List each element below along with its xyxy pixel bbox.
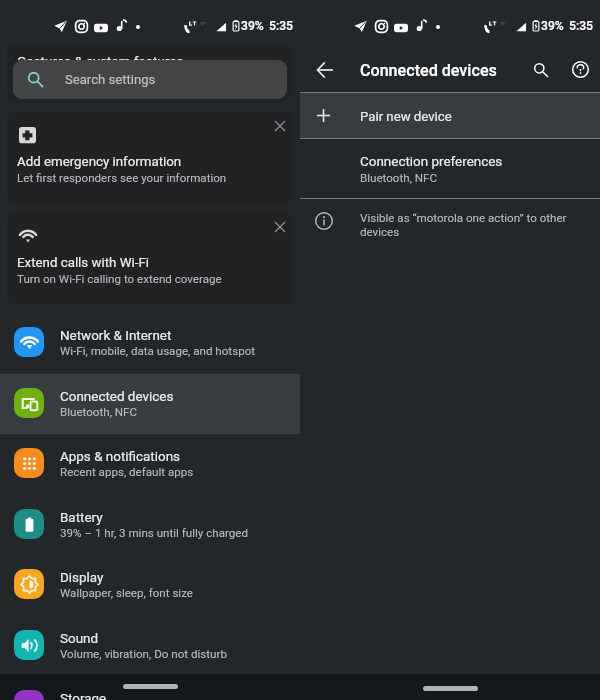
staticText: Bluetooth, NFC [60,405,138,419]
staticText: Wi-Fi, mobile, data usage, and hotspot [60,344,256,358]
staticText: Connected devices [360,61,497,80]
button[interactable]: Connected devices [0,374,300,434]
staticText: Sound [60,631,99,647]
button[interactable]: Add emergency information [7,111,293,204]
button[interactable]: Display [0,555,300,615]
button[interactable]: Help [566,55,595,84]
staticText: Search settings [65,72,156,87]
staticText: Apps & notifications [60,449,181,465]
button[interactable]: Network & Internet [0,313,300,373]
staticText: 39% [541,19,564,33]
button[interactable]: Back [310,55,339,84]
staticText: Gestures & system features [17,53,184,60]
staticText: 39% [241,19,264,33]
staticText: Network & Internet [60,328,172,344]
staticText: Connection preferences [360,154,503,170]
staticText: Connected devices [60,389,174,405]
staticText: Pair new device [360,109,452,124]
button[interactable]: Dismiss [266,213,293,240]
button[interactable]: Extend calls with Wi-Fi [7,212,293,305]
staticText: Storage [60,691,107,700]
staticText: 39% – 1 hr, 3 mins until fully charged [60,526,248,540]
staticText: 5:35 [269,19,294,33]
button[interactable]: Sound [0,616,300,676]
button[interactable]: Storage [0,676,300,700]
staticText: Wallpaper, sleep, font size [60,586,193,600]
staticText: Volume, vibration, Do not disturb [60,647,227,661]
staticText: Extend calls with Wi-Fi [17,255,150,271]
button[interactable]: Apps & notifications [0,434,300,494]
button[interactable]: Dismiss [266,112,293,139]
staticText: 5:35 [569,19,594,33]
staticText: Battery [60,510,103,526]
staticText: Bluetooth, NFC [360,171,438,185]
staticText: Turn on Wi-Fi calling to extend coverage [17,272,222,286]
button[interactable]: Battery [0,495,300,555]
button[interactable]: Connection preferences [300,139,600,198]
staticText: Add emergency information [17,154,182,170]
staticText: Display [60,570,104,586]
button[interactable]: Pair new device [300,93,600,138]
button[interactable]: Search settings [13,60,287,99]
button[interactable]: Search [526,55,555,84]
staticText: Recent apps, default apps [60,465,194,479]
staticText: Visible as “motorola one action” to othe… [360,211,574,239]
staticText: Let first responders see your informatio… [17,171,227,185]
